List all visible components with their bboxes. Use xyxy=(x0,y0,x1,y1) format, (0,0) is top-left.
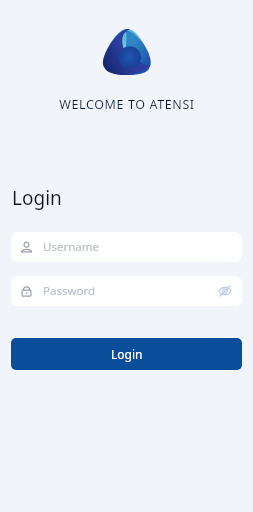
button[interactable]: Show password xyxy=(217,283,233,299)
button[interactable]: Login xyxy=(11,338,242,370)
staticText: Login xyxy=(12,185,62,211)
button[interactable]: Password xyxy=(11,276,242,306)
staticText: Login xyxy=(111,346,143,362)
staticText: WELCOME TO ATENSI xyxy=(59,96,195,113)
button[interactable]: Username xyxy=(11,232,242,262)
staticText: Password xyxy=(43,283,96,299)
staticText: Username xyxy=(43,239,99,255)
